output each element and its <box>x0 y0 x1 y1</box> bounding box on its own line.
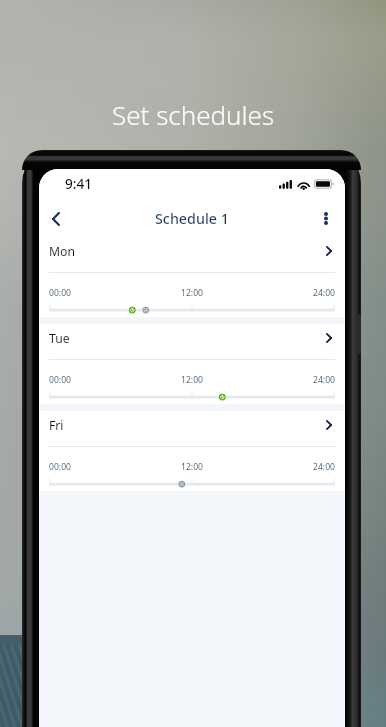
staticText: 12:00 <box>181 287 203 299</box>
button[interactable]: Schedule timeline <box>49 388 335 404</box>
button[interactable]: Schedule timeline <box>49 301 335 317</box>
staticText: Set schedules <box>112 97 275 132</box>
staticText: 12:00 <box>181 461 203 473</box>
button[interactable]: Tue <box>39 324 345 359</box>
staticText: 24:00 <box>313 374 335 386</box>
staticText: 24:00 <box>313 461 335 473</box>
staticText: Fri <box>49 417 64 434</box>
button[interactable]: More options <box>310 200 342 237</box>
staticText: 00:00 <box>49 461 71 473</box>
staticText: 24:00 <box>313 287 335 299</box>
staticText: 00:00 <box>49 374 71 386</box>
button[interactable]: Mon <box>39 237 345 272</box>
staticText: 00:00 <box>49 287 71 299</box>
button[interactable]: Back <box>40 200 71 237</box>
staticText: 12:00 <box>181 374 203 386</box>
staticText: Schedule 1 <box>155 209 229 228</box>
staticText: Tue <box>49 330 70 347</box>
button[interactable]: Fri <box>39 411 345 446</box>
staticText: 9:41 <box>65 174 93 193</box>
button[interactable]: Schedule timeline <box>49 475 335 491</box>
staticText: Mon <box>49 243 75 260</box>
